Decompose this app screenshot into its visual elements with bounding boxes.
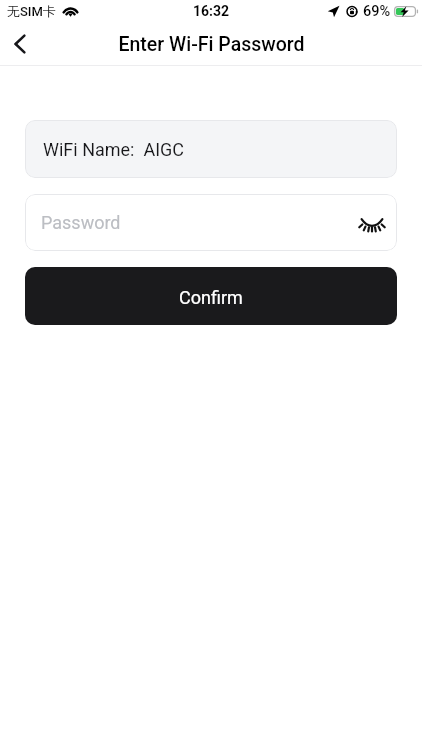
staticText: Confirm: [179, 287, 243, 308]
button[interactable]: Show password: [353, 204, 391, 242]
staticText: WiFi Name: AIGC: [43, 139, 185, 160]
button[interactable]: Confirm: [25, 267, 397, 325]
staticText: 16:32: [193, 3, 230, 19]
button[interactable]: WiFi Name: AIGC: [25, 120, 397, 178]
button[interactable]: Back: [0, 24, 40, 64]
button[interactable]: Password: [25, 194, 397, 251]
staticText: 69%: [363, 3, 391, 20]
staticText: 无SIM卡: [7, 3, 56, 19]
staticText: Password: [41, 212, 121, 233]
staticText: Enter Wi-Fi Password: [118, 33, 305, 56]
